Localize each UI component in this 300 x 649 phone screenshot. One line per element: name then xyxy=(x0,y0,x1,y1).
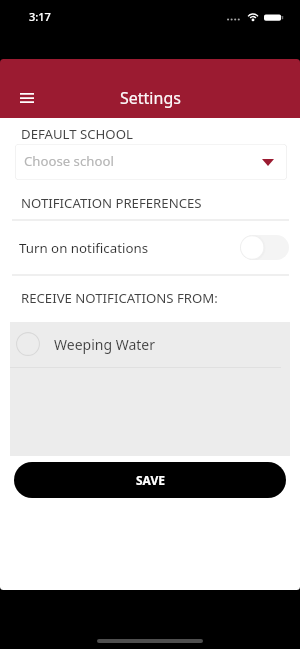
staticText: Choose school xyxy=(24,152,114,170)
button[interactable]: Choose school xyxy=(15,144,287,180)
staticText: NOTIFICATION PREFERENCES xyxy=(21,194,202,212)
button[interactable]: Open navigation menu xyxy=(8,85,46,111)
button[interactable]: SAVE xyxy=(14,462,286,498)
staticText: Settings xyxy=(120,87,181,109)
staticText: Weeping Water xyxy=(54,335,155,354)
button[interactable]: Weeping Water xyxy=(10,322,290,367)
staticText: 3:17 xyxy=(29,9,51,24)
staticText: DEFAULT SCHOOL xyxy=(21,125,133,143)
staticText: Turn on notifications xyxy=(19,239,149,257)
staticText: SAVE xyxy=(136,472,165,488)
staticText: RECEIVE NOTIFICATIONS FROM: xyxy=(21,289,218,307)
button[interactable]: Turn on notifications xyxy=(0,221,300,274)
